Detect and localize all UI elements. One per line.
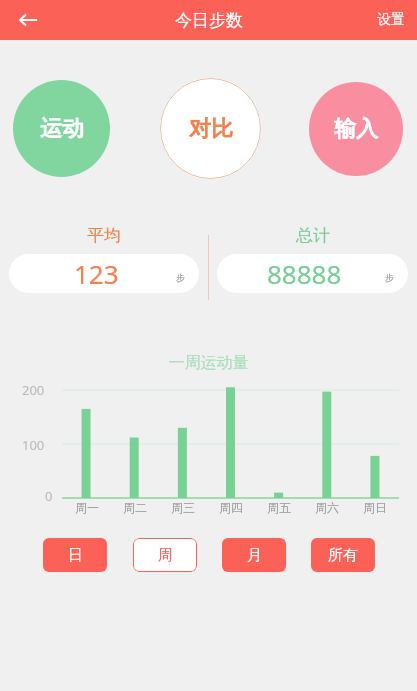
staticText: 平均 [87, 225, 121, 246]
button[interactable]: 对比 [160, 78, 261, 179]
staticText: 设置 [377, 11, 405, 29]
staticText: 对比 [189, 115, 233, 143]
staticText: 周二 [123, 500, 147, 515]
staticText: 周五 [267, 500, 291, 515]
button[interactable]: Back [6, 0, 50, 40]
staticText: 周一 [75, 500, 99, 515]
button[interactable]: 周 [133, 538, 197, 572]
staticText: 200 [22, 381, 45, 399]
button[interactable]: 日 [43, 538, 107, 572]
staticText: 0 [45, 487, 53, 505]
button[interactable]: 输入 [309, 82, 403, 176]
staticText: 日 [68, 546, 83, 565]
staticText: 100 [22, 436, 45, 454]
staticText: 周四 [219, 500, 243, 515]
staticText: 步 [385, 272, 394, 283]
button[interactable]: 设置 [365, 3, 417, 37]
staticText: 周 [158, 546, 173, 565]
button[interactable]: 所有 [311, 538, 375, 572]
staticText: 一周运动量 [0, 353, 417, 373]
button[interactable]: 123 [9, 254, 199, 293]
staticText: 123 [74, 256, 119, 291]
staticText: 总计 [296, 225, 330, 246]
staticText: 步 [176, 272, 185, 283]
staticText: 88888 [267, 256, 342, 291]
button[interactable]: 月 [222, 538, 286, 572]
button[interactable]: 运动 [13, 80, 110, 177]
button[interactable]: 88888 [217, 254, 408, 293]
staticText: 今日步数 [175, 10, 243, 31]
staticText: 月 [247, 546, 262, 565]
staticText: 周日 [363, 500, 387, 515]
staticText: 运动 [40, 115, 84, 143]
staticText: 周六 [315, 500, 339, 515]
staticText: 所有 [328, 546, 358, 565]
staticText: 输入 [334, 115, 378, 143]
staticText: 周三 [171, 500, 195, 515]
